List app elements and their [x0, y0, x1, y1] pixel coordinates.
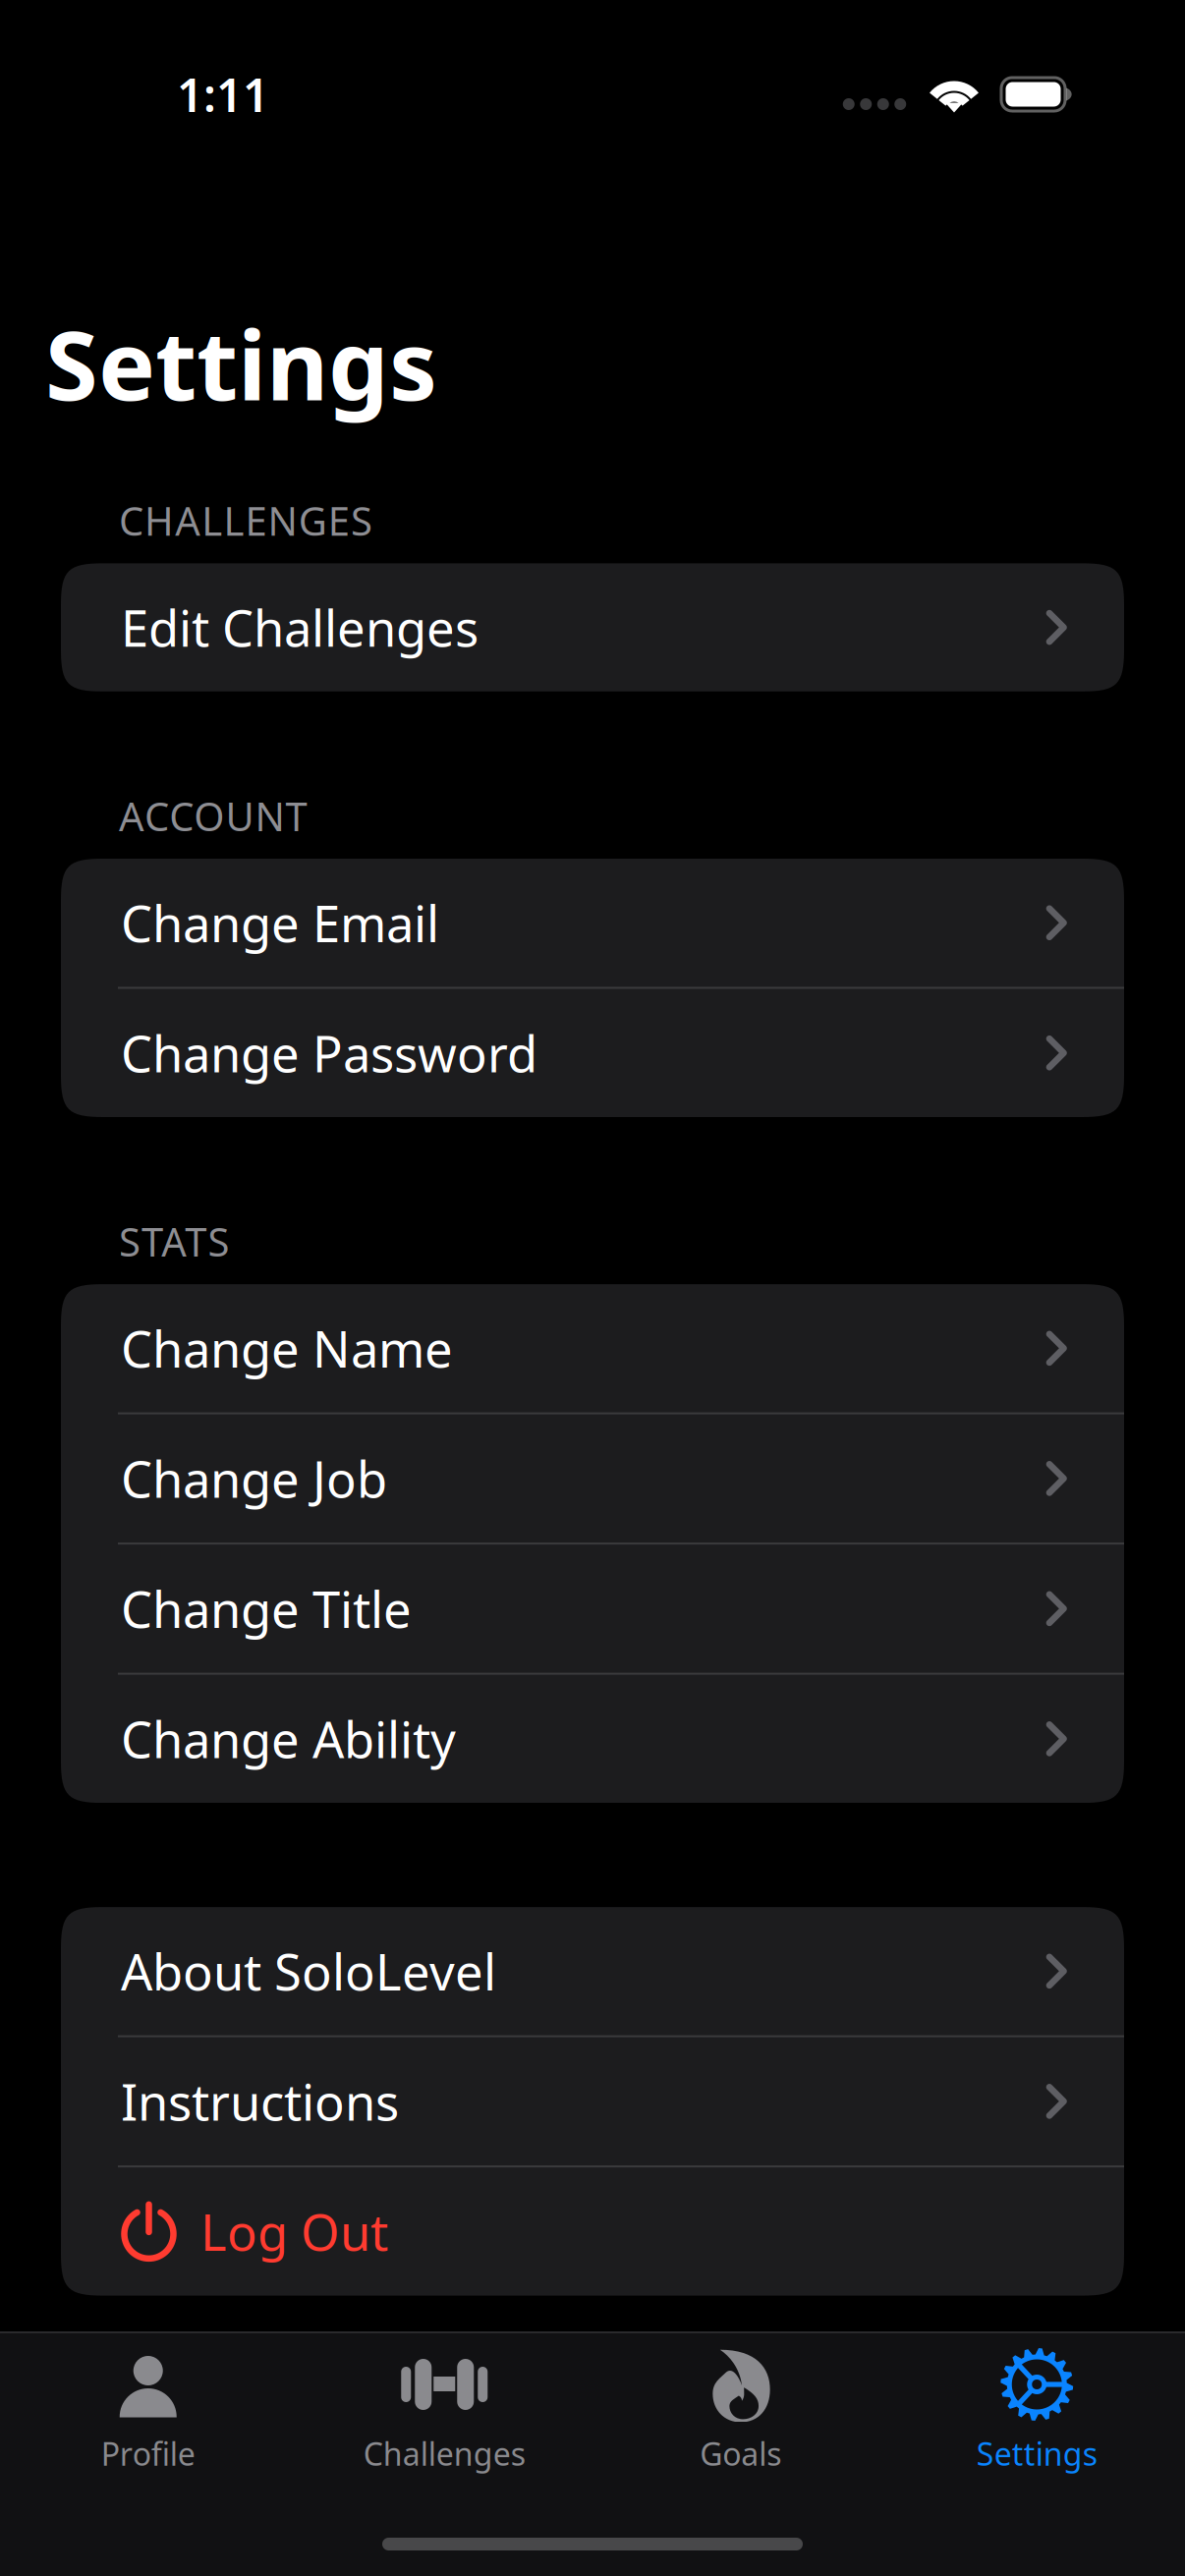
staticText: 1:11 [177, 64, 269, 125]
staticText: STATS [119, 1215, 229, 1267]
staticText: Instructions [121, 2068, 399, 2134]
staticText: Goals [700, 2433, 781, 2474]
button[interactable]: Edit Challenges [61, 563, 1124, 692]
button[interactable]: Goals [592, 2333, 889, 2479]
button[interactable]: Change Ability [61, 1675, 1124, 1803]
staticText: Challenges [363, 2433, 525, 2474]
button[interactable]: Change Password [61, 989, 1124, 1117]
button[interactable]: About SoloLevel [61, 1907, 1124, 2035]
staticText: Settings [976, 2433, 1097, 2474]
button[interactable]: Change Name [61, 1284, 1124, 1412]
button[interactable]: Instructions [61, 2037, 1124, 2165]
button[interactable]: Change Job [61, 1414, 1124, 1543]
staticText: Change Job [121, 1445, 387, 1512]
button[interactable]: Log Out [61, 2167, 1124, 2296]
staticText: Change Ability [121, 1706, 456, 1772]
button[interactable]: Change Email [61, 859, 1124, 987]
staticText: Change Name [121, 1315, 453, 1381]
button[interactable]: Profile [0, 2333, 296, 2479]
button[interactable]: Change Title [61, 1545, 1124, 1673]
staticText: Profile [101, 2433, 195, 2474]
staticText: ACCOUNT [119, 790, 307, 842]
staticText: Log Out [200, 2198, 388, 2265]
staticText: Change Password [121, 1020, 537, 1086]
button[interactable]: Challenges [296, 2333, 592, 2479]
staticText: About SoloLevel [121, 1938, 496, 2004]
staticText: Change Email [121, 890, 439, 956]
staticText: Settings [45, 300, 437, 427]
button[interactable]: Settings [889, 2333, 1185, 2479]
staticText: Edit Challenges [121, 594, 479, 661]
staticText: Change Title [121, 1576, 412, 1642]
staticText: CHALLENGES [119, 494, 372, 547]
